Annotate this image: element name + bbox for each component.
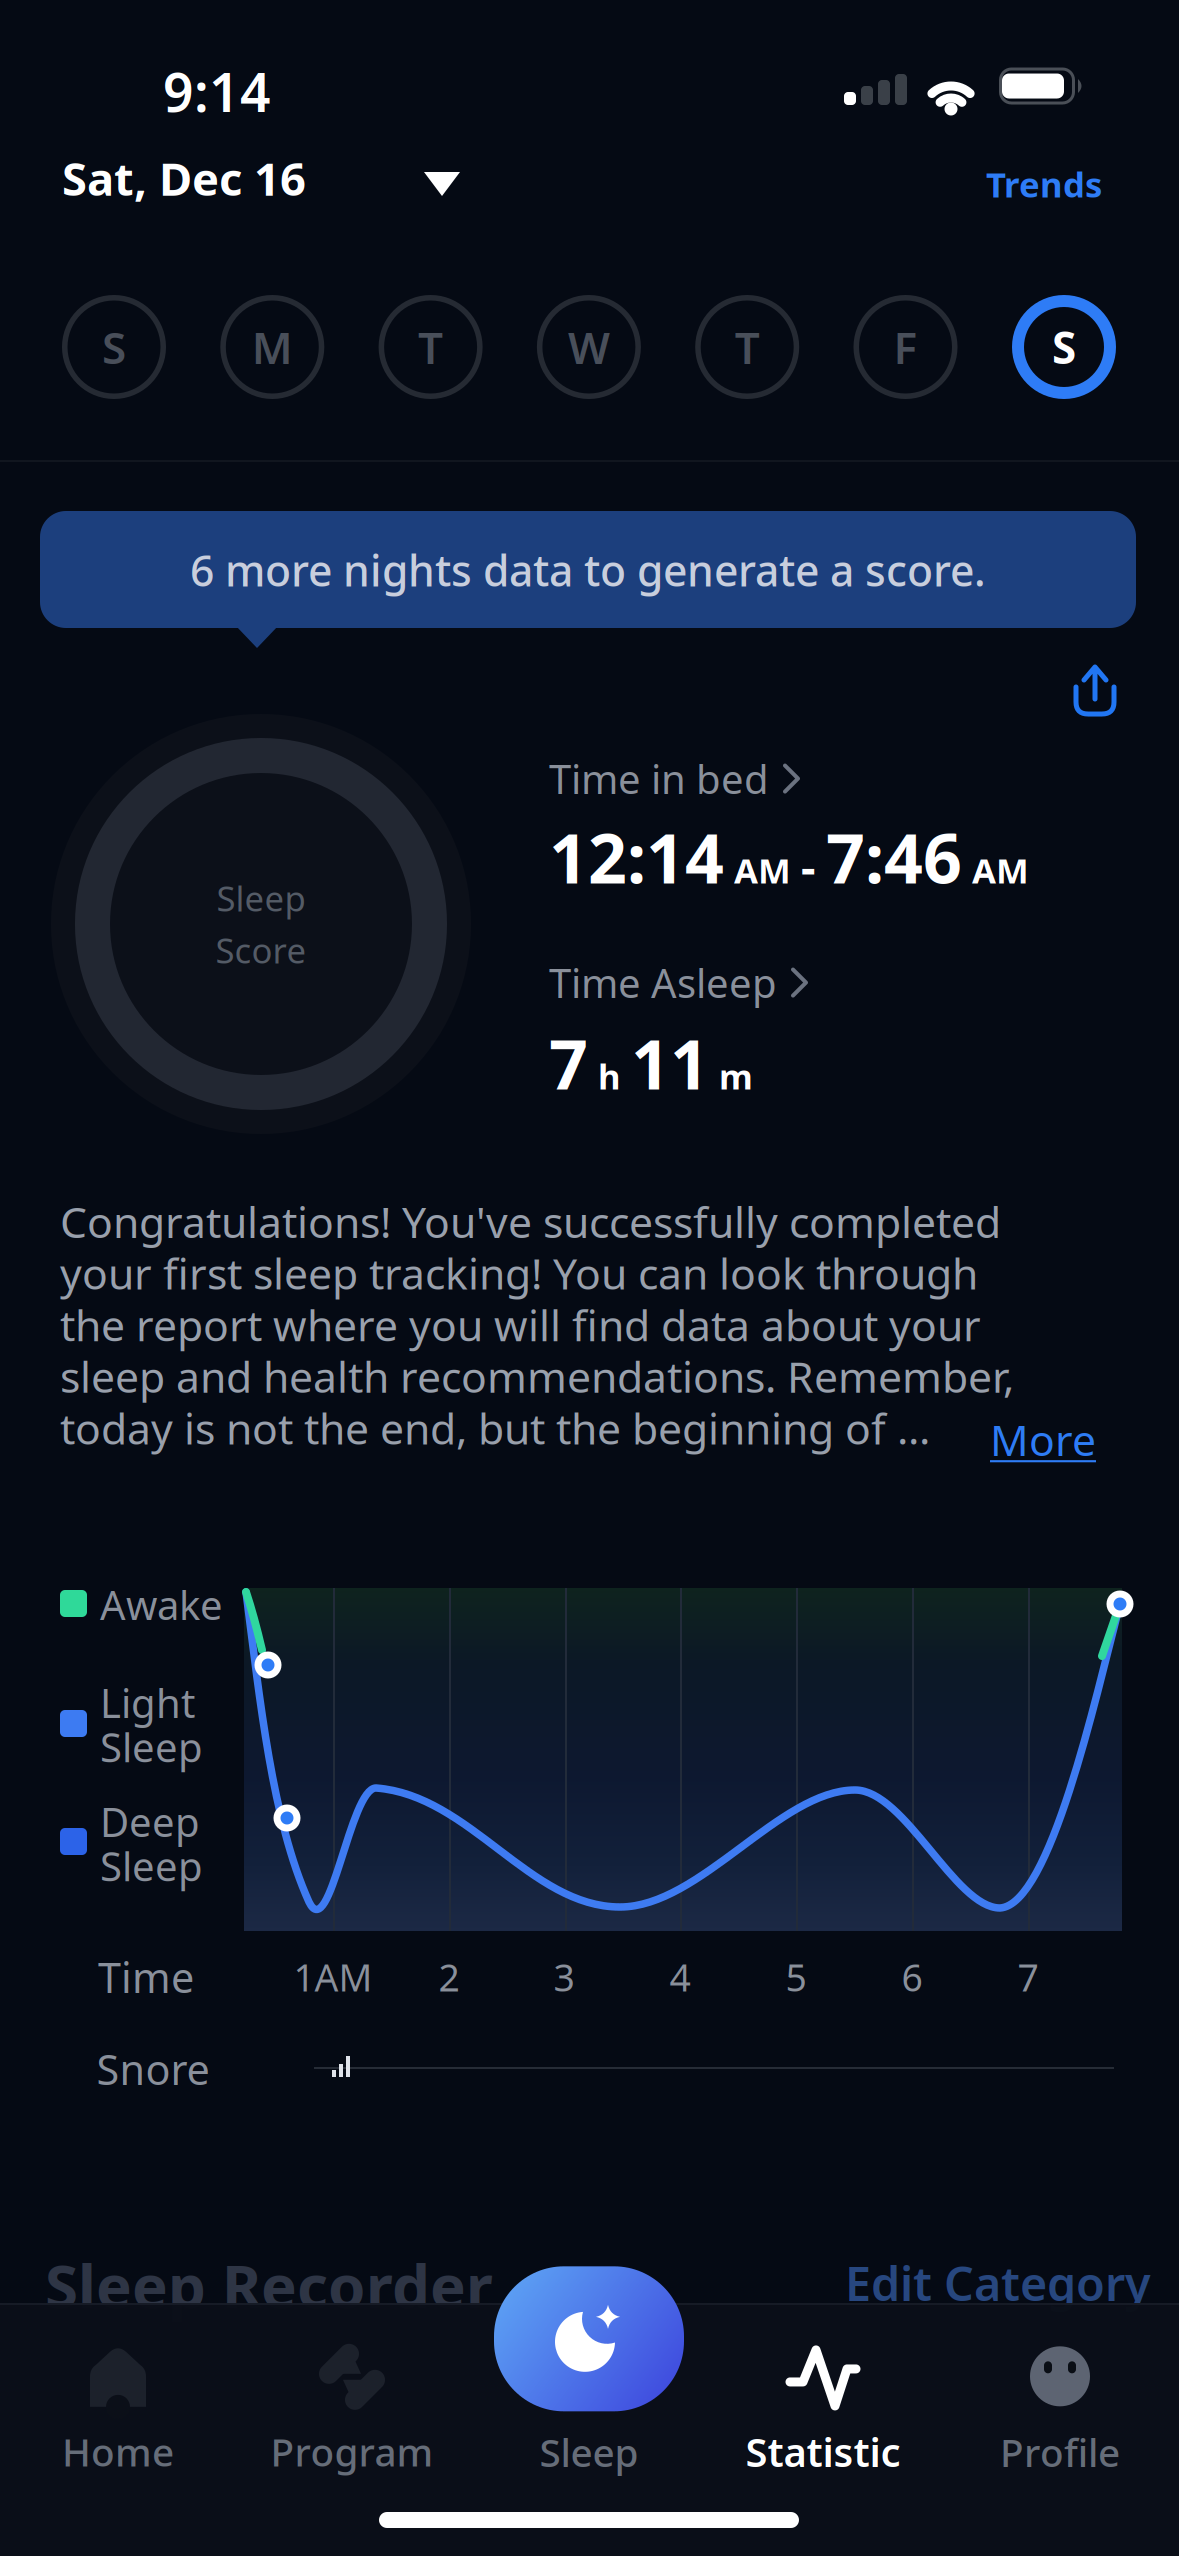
staticText: Snore [96,2042,209,2096]
button[interactable]: Profile [1000,2346,1120,2478]
staticText: T [735,318,760,376]
staticText: M [252,318,293,376]
staticText: Trends [986,161,1102,207]
staticText: Sleep [539,2426,638,2478]
staticText: S [102,318,126,376]
button[interactable]: Sleep [494,2266,684,2478]
button[interactable]: Edit Category [845,2252,1151,2314]
staticText: Edit Category [845,2252,1151,2314]
staticText: 7 [1017,1952,1038,2002]
staticText: 5 [785,1952,806,2002]
button[interactable]: S [62,295,166,399]
staticText: 1AM [293,1952,372,2002]
button[interactable]: Sat, Dec 16 [0,0,1179,2556]
staticText: Congratulations! You've successfully com… [60,1193,1014,1456]
staticText: h [598,1053,621,1099]
staticText: Time [98,1950,194,2004]
button[interactable]: T [695,295,799,399]
button[interactable]: M [220,295,324,399]
staticText: 4 [669,1952,690,2002]
button[interactable]: Trends [986,161,1102,207]
staticText: Time Asleep [549,956,777,1009]
button[interactable]: Time in bed [549,752,801,805]
button[interactable]: Statistic [745,2346,900,2478]
staticText: Score [215,927,306,973]
staticText: m [719,1053,753,1099]
button[interactable]: More [990,1411,1096,1468]
button[interactable]: S [1012,295,1116,399]
staticText: 2 [438,1952,459,2002]
staticText: Home [62,2426,174,2477]
staticText: 9:14 [163,56,271,127]
button[interactable]: Program [270,2347,433,2477]
staticText: 7 [549,1018,588,1108]
button[interactable]: T [379,295,483,399]
staticText: Sleep Recorder [45,2245,493,2325]
staticText: Program [270,2426,433,2477]
staticText: Light Sleep [100,1676,203,1773]
staticText: Sat, Dec 16 [62,148,306,208]
staticText: F [893,318,917,376]
staticText: Sleep [216,875,305,921]
button[interactable]: Home [62,2347,174,2477]
staticText: W [568,318,610,376]
staticText: T [418,318,443,376]
staticText: Deep Sleep [100,1795,203,1892]
staticText: Time in bed [549,752,769,805]
staticText: 12:14 [549,812,724,902]
staticText: Statistic [745,2425,900,2478]
staticText: - [801,836,816,896]
staticText: 7:46 [826,812,962,902]
staticText: AM [734,847,791,893]
staticText: More [990,1411,1096,1468]
staticText: 3 [553,1952,574,2002]
button[interactable]: Time Asleep [549,956,809,1009]
staticText: S [1052,318,1076,376]
staticText: 11 [631,1018,709,1108]
button[interactable]: W [537,295,641,399]
button[interactable]: F [853,295,957,399]
staticText: Profile [1000,2426,1120,2478]
staticText: 6 more nights data to generate a score. [190,542,986,598]
staticText: 6 [901,1952,922,2002]
staticText: AM [972,847,1029,893]
button[interactable] [0,0,1179,2556]
staticText: Awake [100,1578,223,1631]
